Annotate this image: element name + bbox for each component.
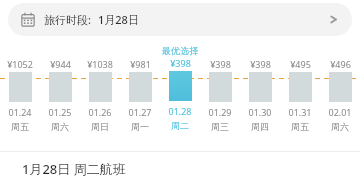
staticText: 周二 [171, 120, 189, 131]
staticText: 01.31 [288, 106, 312, 118]
staticText: 01.30 [248, 106, 272, 118]
button[interactable]: 旅行时段: [8, 3, 352, 36]
button[interactable]: ¥398 [200, 45, 240, 148]
staticText: 旅行时段: [44, 12, 91, 27]
staticText: ¥398 [210, 58, 231, 70]
staticText: ¥398 [250, 58, 271, 70]
staticText: 01.29 [208, 106, 232, 118]
staticText: 1月28日 [98, 12, 139, 27]
staticText: 周五 [11, 121, 29, 132]
button[interactable]: ¥981 [120, 45, 160, 148]
button[interactable]: ¥944 [40, 45, 80, 148]
staticText: 周五 [291, 121, 309, 132]
button[interactable]: 最优选择 [160, 45, 200, 148]
staticText: 01.25 [48, 106, 72, 118]
button[interactable]: ¥496 [320, 45, 360, 148]
staticText: 01.27 [128, 106, 152, 118]
button[interactable]: ¥1052 [0, 45, 40, 148]
staticText: ¥981 [130, 58, 151, 70]
staticText: ¥398 [170, 57, 191, 69]
staticText: 02.01 [328, 106, 352, 118]
staticText: 周一 [131, 121, 149, 132]
button[interactable]: ¥398 [240, 45, 280, 148]
staticText: 01.24 [8, 106, 32, 118]
staticText: ¥495 [290, 58, 311, 70]
staticText: 周六 [331, 121, 349, 132]
staticText: 周三 [211, 121, 229, 132]
staticText: 01.28 [168, 105, 192, 117]
staticText: ¥496 [330, 58, 351, 70]
staticText: 1月28日 周二航班 [22, 160, 126, 178]
staticText: 周四 [251, 121, 269, 132]
staticText: 01.26 [88, 106, 112, 118]
staticText: ¥1038 [87, 58, 113, 70]
staticText: 最优选择 [162, 45, 198, 56]
button[interactable]: ¥495 [280, 45, 320, 148]
staticText: 周日 [91, 121, 109, 132]
button[interactable]: ¥1038 [80, 45, 120, 148]
other: 展开 [328, 14, 339, 25]
staticText: ¥1052 [7, 58, 33, 70]
staticText: 周六 [51, 121, 69, 132]
staticText: ¥944 [50, 58, 71, 70]
